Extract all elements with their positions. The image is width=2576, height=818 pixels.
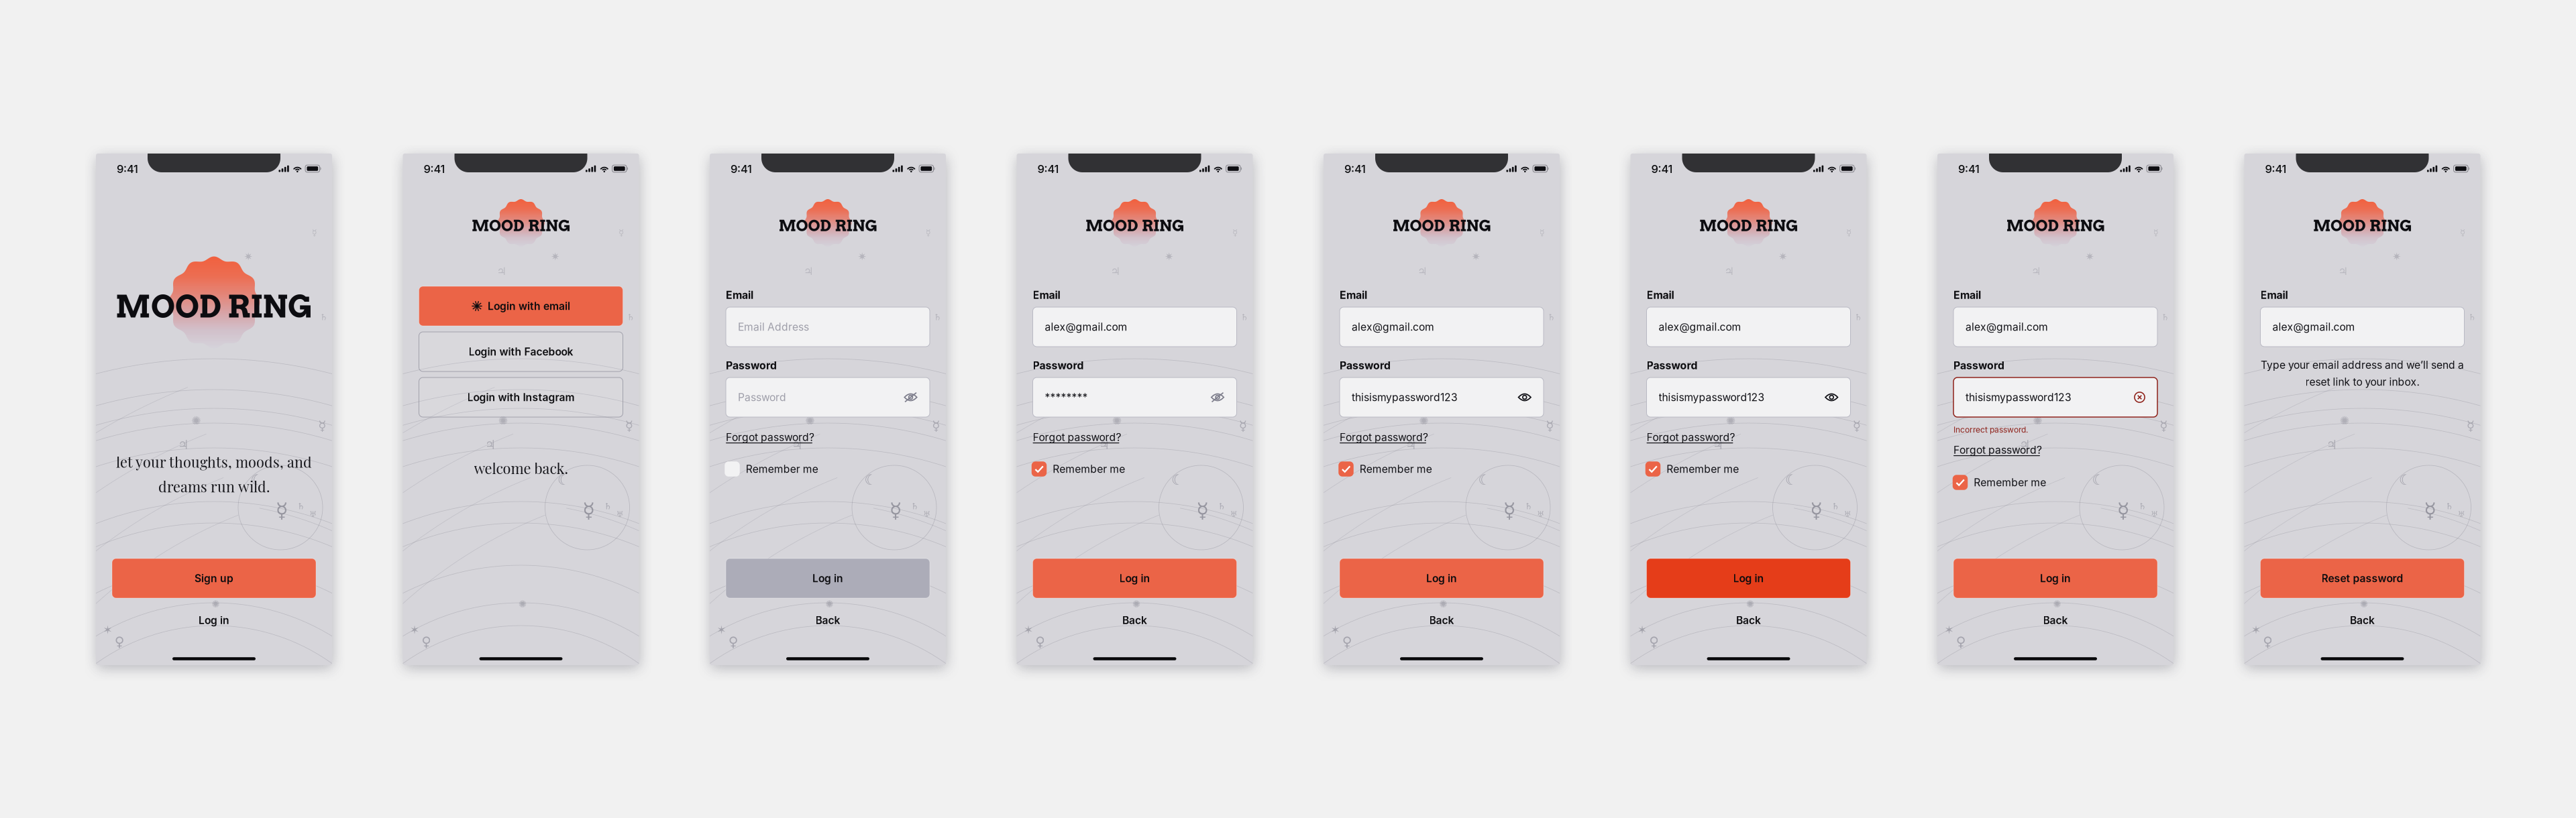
staticText: ♃ — [497, 265, 506, 278]
staticText: ♅ — [309, 510, 317, 519]
button[interactable]: Log in — [1647, 559, 1850, 598]
staticText: Back — [2350, 614, 2375, 627]
staticText: Remember me — [1666, 463, 1739, 475]
button[interactable]: Login with Instagram — [419, 377, 623, 417]
staticText: Login with Facebook — [469, 345, 573, 358]
staticText: ♄ — [1218, 501, 1226, 511]
staticText: ♃ — [1417, 265, 1427, 278]
staticText: ☿ — [1853, 418, 1861, 434]
staticText: ☿ — [2460, 227, 2465, 238]
staticText: 9:41 — [2265, 162, 2287, 176]
staticText: ♅ — [923, 510, 931, 519]
button[interactable]: Back — [2325, 612, 2399, 628]
staticText: ☿ — [276, 499, 288, 523]
staticText: ✺ — [2360, 598, 2368, 610]
staticText: ♃ — [1098, 437, 1110, 452]
staticText: Email — [726, 289, 753, 301]
button[interactable]: Forgot password? — [726, 432, 814, 447]
staticText: 9:41 — [1958, 162, 1980, 176]
staticText: thisismypassword123 — [1352, 391, 1458, 404]
button[interactable]: Log in — [1340, 559, 1544, 598]
staticText: ♅ — [2151, 510, 2158, 519]
button[interactable]: Log in — [1953, 559, 2157, 598]
staticText: MOOD RING — [779, 216, 877, 235]
staticText: ☾ — [1478, 472, 1491, 488]
staticText: Type your email address and we’ll send a — [2261, 359, 2464, 371]
staticText: Forgot password? — [726, 431, 814, 444]
button[interactable]: Back — [791, 612, 865, 628]
staticText: ☿ — [1539, 227, 1545, 238]
staticText: ☿ — [925, 227, 931, 238]
staticText: ♅ — [1844, 510, 1851, 519]
staticText: ♄ — [1547, 312, 1555, 322]
staticText: ☿ — [1232, 227, 1238, 238]
button[interactable]: Back — [1405, 612, 1479, 628]
staticText: 9:41 — [1651, 162, 1673, 176]
staticText: ♅ — [616, 510, 624, 519]
staticText: ☿ — [932, 418, 940, 434]
button[interactable]: Remember me — [1954, 475, 2051, 490]
staticText: ✺ — [518, 598, 526, 610]
button[interactable]: Log in — [726, 559, 930, 598]
staticText: ******** — [1045, 391, 1088, 404]
staticText: Sign up — [195, 572, 233, 585]
staticText: Forgot password? — [1340, 431, 1428, 444]
button[interactable]: Sign up — [112, 559, 316, 598]
staticText: ☾ — [2399, 472, 2412, 488]
button[interactable]: Remember me — [1340, 461, 1437, 477]
staticText: ✶ — [103, 623, 113, 637]
staticText: ✶ — [1024, 623, 1034, 637]
staticText: alex@gmail.com — [2272, 321, 2355, 333]
staticText: ♀ — [1956, 634, 1966, 650]
button[interactable]: Back — [1098, 612, 1172, 628]
staticText: ♅ — [2458, 510, 2465, 519]
button[interactable]: Remember me — [1647, 461, 1744, 477]
button[interactable]: Forgot password? — [1340, 432, 1428, 447]
staticText: ☾ — [557, 472, 570, 488]
staticText: ♄ — [1524, 501, 1533, 511]
staticText: ✶ — [2251, 623, 2261, 637]
staticText: MOOD RING — [2006, 216, 2105, 235]
button[interactable]: Reset password — [2260, 559, 2464, 598]
staticText: thisismypassword123 — [1659, 391, 1765, 404]
staticText: ♄ — [627, 312, 635, 322]
button[interactable]: Remember me — [726, 461, 823, 477]
staticText: ♄ — [1854, 312, 1862, 322]
button[interactable]: Remember me — [1033, 461, 1130, 477]
button[interactable]: Back — [2019, 612, 2092, 628]
button[interactable]: Forgot password? — [1953, 445, 2042, 459]
staticText: ☿ — [2424, 499, 2437, 523]
button[interactable]: Forgot password? — [1033, 432, 1121, 447]
staticText: ✶ — [1330, 623, 1340, 637]
staticText: Password — [1647, 359, 1698, 372]
staticText: ☿ — [1239, 418, 1247, 434]
staticText: alex@gmail.com — [1352, 321, 1434, 333]
button[interactable]: Log in — [1033, 559, 1237, 598]
staticText: Remember me — [1360, 463, 1432, 475]
staticText: ☿ — [1810, 499, 1823, 523]
staticText: Incorrect password. — [1953, 425, 2028, 435]
button[interactable]: Login with Facebook — [419, 332, 623, 371]
staticText: let your thoughts, moods, and — [116, 452, 312, 471]
staticText: ✷ — [1778, 250, 1787, 263]
staticText: ☿ — [318, 418, 326, 434]
staticText: ♄ — [2468, 312, 2476, 322]
staticText: ☿ — [889, 499, 902, 523]
staticText: Reset password — [2321, 572, 2403, 585]
staticText: ✷ — [858, 250, 866, 263]
staticText: Log in — [1426, 572, 1457, 585]
staticText: ✺ — [211, 598, 219, 610]
staticText: Email — [1953, 289, 1981, 301]
button[interactable]: Login with email — [419, 286, 623, 326]
staticText: ✺ — [498, 414, 508, 427]
button[interactable]: Back — [1712, 612, 1785, 628]
staticText: ✺ — [2340, 414, 2350, 427]
button[interactable]: Log in — [177, 612, 251, 628]
button[interactable]: Forgot password? — [1647, 432, 1735, 447]
staticText: ♄ — [933, 312, 942, 322]
staticText: ♄ — [2138, 501, 2146, 511]
staticText: ✺ — [1419, 414, 1429, 427]
staticText: Password — [1033, 359, 1084, 372]
staticText: ✺ — [1112, 414, 1122, 427]
staticText: ♀ — [1649, 634, 1659, 650]
